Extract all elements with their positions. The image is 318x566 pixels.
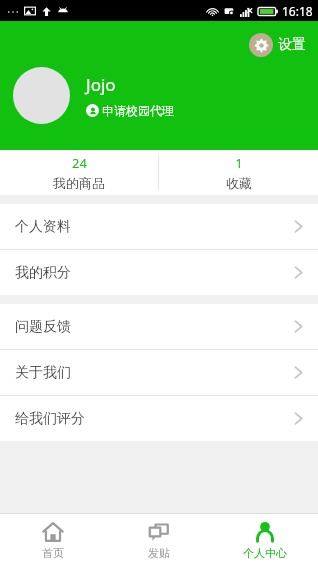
button[interactable]: 首页: [0, 514, 106, 566]
staticText: 1: [235, 154, 243, 172]
staticText: 发贴: [148, 546, 170, 560]
button[interactable]: 我的积分: [0, 250, 318, 295]
staticText: 首页: [42, 546, 64, 560]
staticText: 设置: [278, 36, 306, 54]
button[interactable]: 申请校园代理: [86, 103, 174, 118]
staticText: 个人中心: [243, 546, 287, 560]
button[interactable]: Profile photo: [13, 67, 70, 124]
staticText: 我的商品: [53, 175, 105, 191]
staticText: 16:18: [282, 3, 313, 19]
button[interactable]: 1: [159, 150, 318, 195]
staticText: 关于我们: [15, 364, 71, 382]
button[interactable]: 个人中心: [212, 514, 318, 566]
staticText: 我的积分: [15, 264, 71, 282]
button[interactable]: 设置: [247, 31, 308, 59]
staticText: 24: [72, 154, 87, 172]
staticText: 收藏: [226, 175, 252, 191]
button[interactable]: 给我们评分: [0, 396, 318, 441]
staticText: 个人资料: [15, 218, 71, 236]
button[interactable]: 关于我们: [0, 350, 318, 395]
button[interactable]: 问题反馈: [0, 304, 318, 349]
staticText: 给我们评分: [15, 410, 85, 428]
staticText: 申请校园代理: [102, 103, 174, 118]
button[interactable]: 发贴: [106, 514, 212, 566]
staticText: Jojo: [86, 73, 116, 96]
button[interactable]: 个人资料: [0, 204, 318, 249]
staticText: 问题反馈: [15, 318, 71, 336]
button[interactable]: 24: [0, 150, 158, 195]
